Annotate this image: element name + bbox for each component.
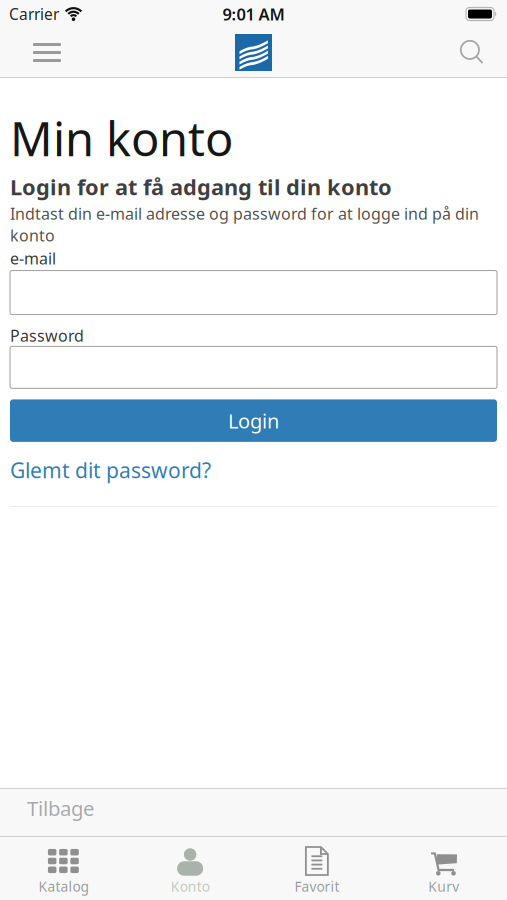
staticText: Carrier	[9, 3, 59, 24]
button[interactable]: Menu	[0, 43, 61, 62]
button[interactable]: Password	[10, 346, 497, 388]
staticText: Favorit	[294, 877, 339, 896]
staticText: Min konto	[10, 106, 233, 170]
staticText: e-mail	[10, 247, 56, 269]
staticText: Login for at få adgang til din konto	[10, 172, 392, 202]
button[interactable]: Katalog	[0, 846, 127, 896]
staticText: Login	[228, 407, 279, 434]
button[interactable]: e-mail	[10, 271, 497, 315]
button[interactable]: Search	[460, 40, 507, 65]
staticText: 9:01 AM	[222, 3, 284, 25]
staticText: Kurv	[428, 877, 459, 896]
staticText: Password	[10, 325, 84, 346]
staticText: Katalog	[38, 877, 88, 896]
button[interactable]: Login	[10, 399, 497, 442]
staticText: Tilbage	[27, 794, 94, 822]
staticText: Indtast din e-mail adresse og password f…	[10, 203, 479, 246]
staticText: Konto	[171, 877, 210, 896]
button[interactable]: Konto	[127, 846, 254, 896]
button[interactable]: Favorit	[253, 846, 380, 896]
button[interactable]: Tilbage	[0, 789, 507, 836]
button[interactable]: Glemt dit password?	[10, 456, 211, 484]
staticText: Glemt dit password?	[10, 456, 211, 484]
button[interactable]: Kurv	[380, 846, 507, 896]
